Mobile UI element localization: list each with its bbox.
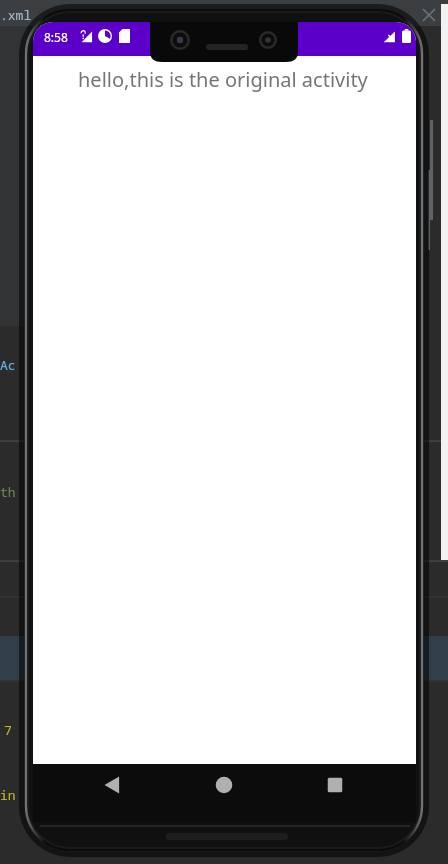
staticText: in (0, 786, 16, 804)
staticText: th (0, 483, 16, 501)
staticText: Ac (0, 356, 16, 374)
staticText: 7 (4, 721, 12, 739)
button[interactable]: Home (204, 765, 244, 805)
button[interactable]: Recent apps (315, 765, 355, 805)
staticText: 8:58 (44, 29, 68, 45)
staticText: .xml (0, 6, 32, 24)
staticText: hello,this is the original activity (78, 66, 368, 93)
button[interactable]: Back (93, 765, 133, 805)
button[interactable]: Close (418, 4, 440, 26)
